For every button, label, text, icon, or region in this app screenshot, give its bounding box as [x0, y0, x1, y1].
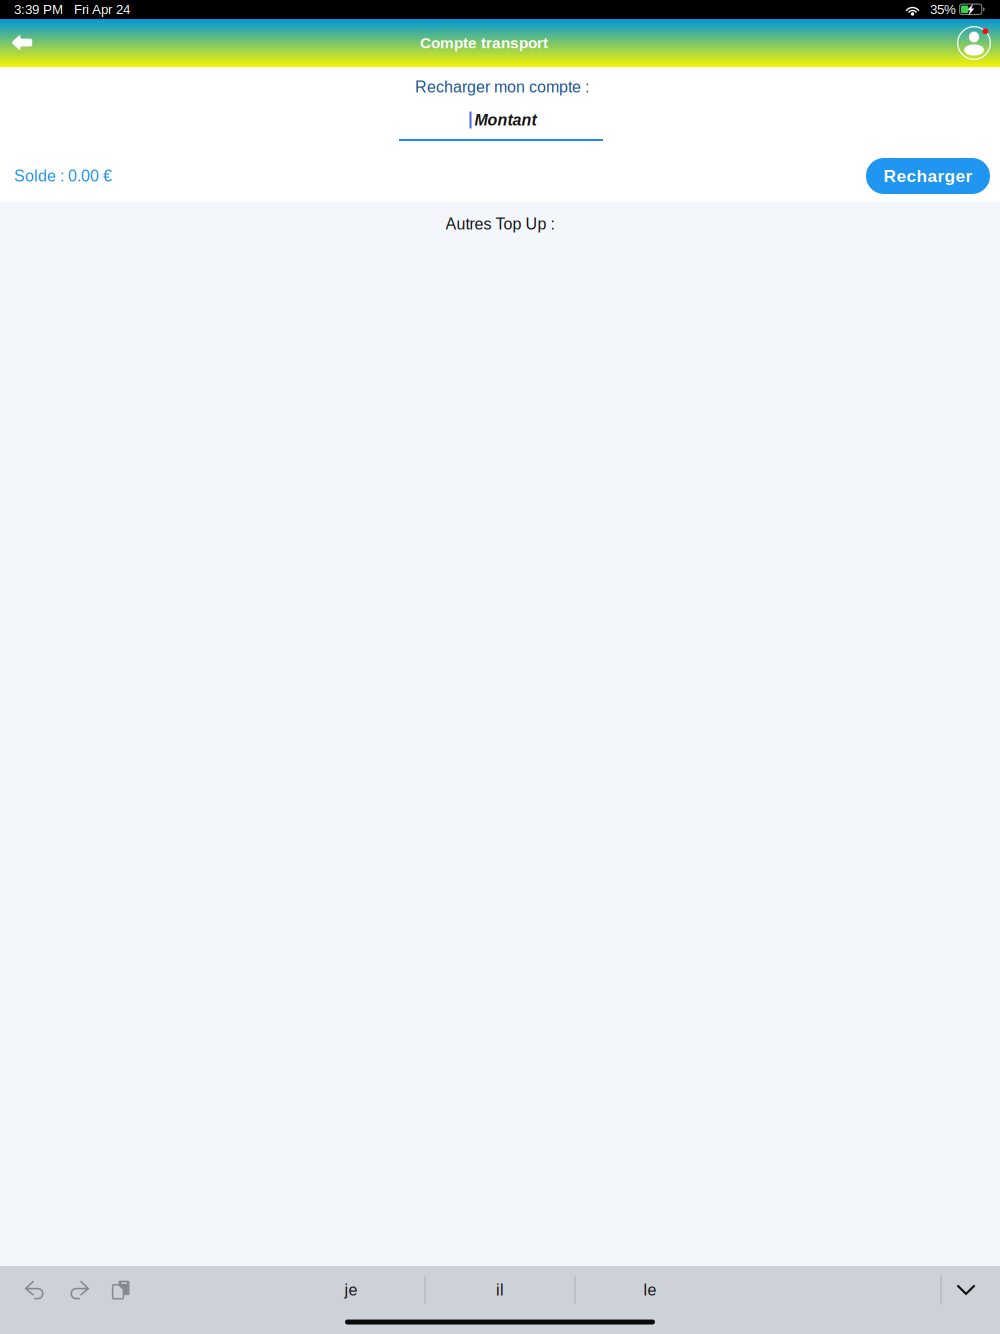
button[interactable]: Paste — [100, 1268, 144, 1312]
staticText: le — [643, 1281, 656, 1299]
staticText: 3:39 PM — [14, 2, 63, 17]
staticText: 35% — [930, 2, 956, 17]
staticText: Solde : 0.00 € — [14, 167, 112, 185]
staticText: Recharger — [883, 166, 972, 186]
staticText: Recharger mon compte : — [415, 78, 589, 96]
staticText: il — [496, 1281, 504, 1299]
staticText: je — [344, 1281, 357, 1299]
button[interactable]: Recharger — [866, 158, 990, 194]
staticText: Fri Apr 24 — [74, 2, 130, 17]
button[interactable]: le — [577, 1270, 722, 1310]
button[interactable]: Back — [0, 19, 48, 67]
button[interactable]: Hide keyboard — [944, 1268, 988, 1312]
button[interactable]: il — [427, 1270, 572, 1310]
staticText: Compte transport — [420, 34, 548, 51]
button[interactable]: je — [278, 1270, 423, 1310]
staticText: Autres Top Up : — [445, 215, 554, 233]
staticText: Montant — [474, 111, 536, 129]
button[interactable]: Undo — [13, 1268, 57, 1312]
button[interactable]: Redo — [57, 1268, 101, 1312]
button[interactable]: Account — [957, 19, 1000, 67]
